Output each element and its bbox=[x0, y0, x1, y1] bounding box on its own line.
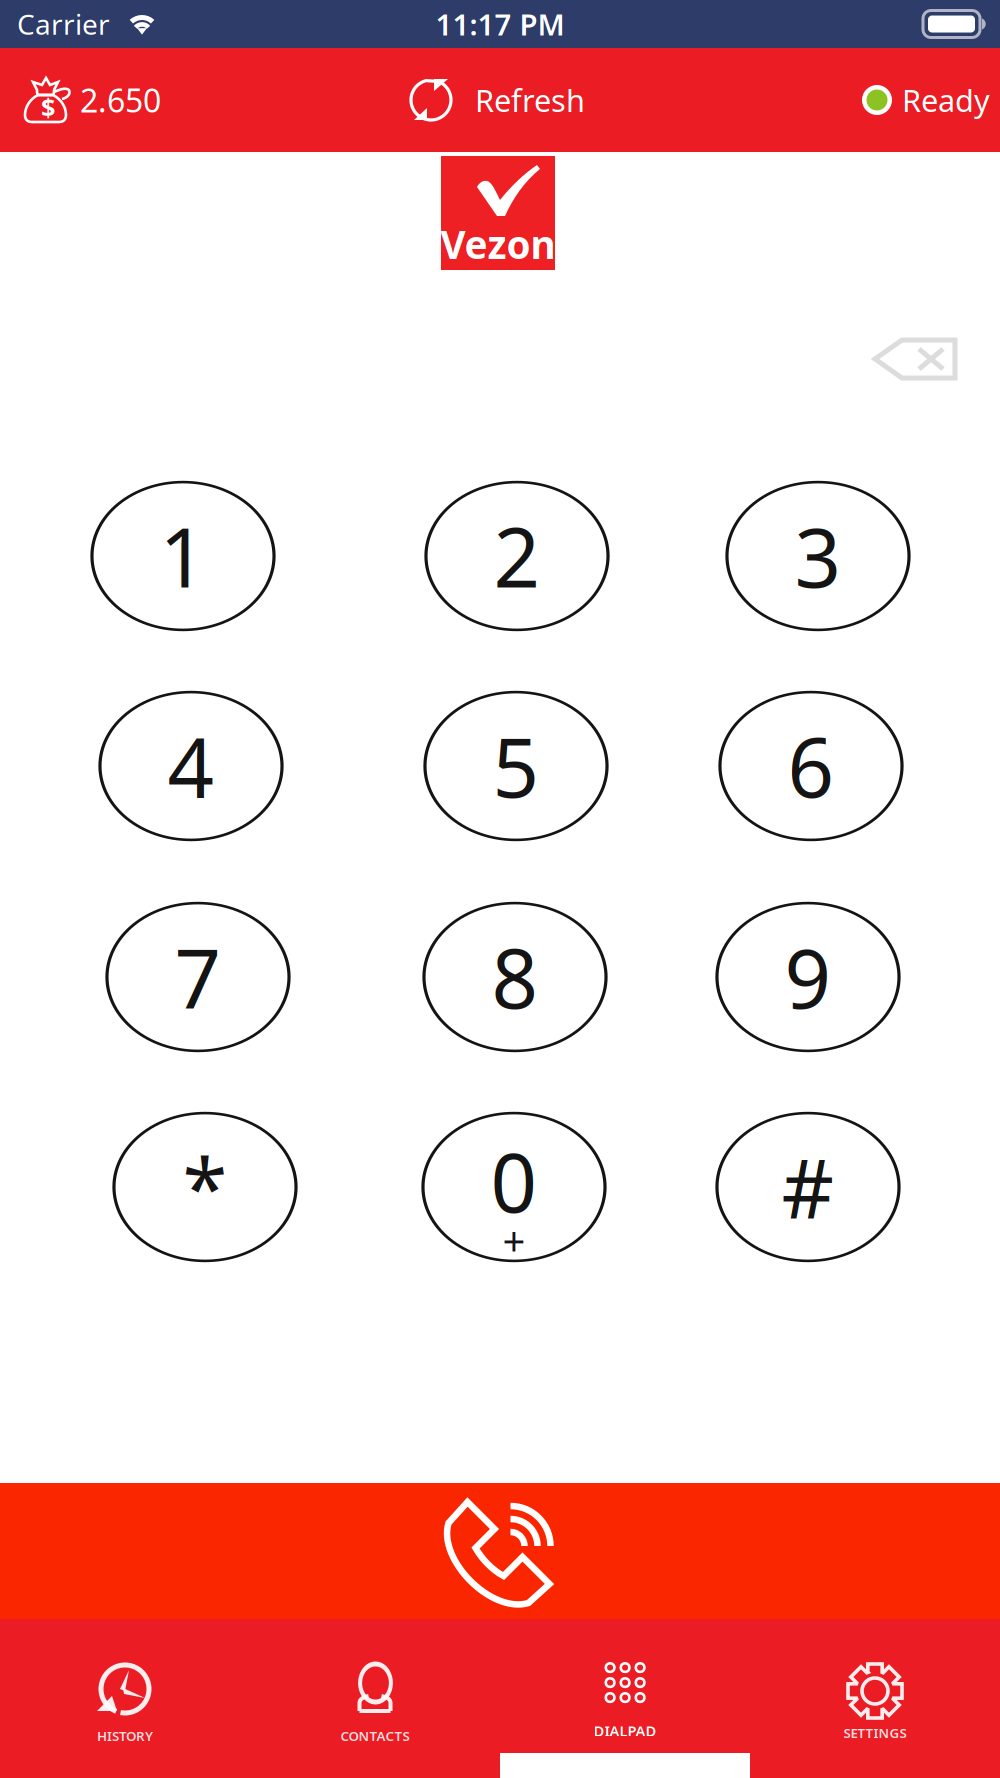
staticText: 3 bbox=[794, 502, 841, 610]
staticText: Carrier bbox=[17, 5, 110, 43]
staticText: DIALPAD bbox=[593, 1721, 656, 1740]
staticText: 2 bbox=[493, 502, 540, 610]
staticText: CONTACTS bbox=[340, 1727, 409, 1745]
staticText: 9 bbox=[784, 923, 831, 1031]
staticText: Vezon bbox=[440, 218, 555, 270]
button[interactable]: # bbox=[703, 1097, 913, 1277]
button[interactable]: SETTINGS bbox=[750, 1619, 1000, 1778]
staticText: * bbox=[182, 1133, 227, 1241]
staticText: Refresh bbox=[475, 80, 585, 120]
button[interactable]: * bbox=[100, 1097, 310, 1277]
staticText: # bbox=[781, 1133, 834, 1241]
button[interactable]: 7 bbox=[93, 887, 303, 1067]
staticText: 1 bbox=[159, 502, 206, 610]
button[interactable]: 8 bbox=[410, 887, 620, 1067]
staticText: 8 bbox=[491, 923, 538, 1031]
button[interactable]: 4 bbox=[86, 676, 296, 856]
staticText: + bbox=[502, 1213, 525, 1266]
staticText: 4 bbox=[167, 712, 214, 820]
button[interactable]: CONTACTS bbox=[250, 1619, 500, 1778]
button[interactable]: 2 bbox=[412, 466, 622, 646]
button[interactable]: Refresh bbox=[393, 48, 597, 152]
button[interactable]: HISTORY bbox=[0, 1619, 250, 1778]
staticText: 0 bbox=[490, 1127, 537, 1235]
button[interactable]: $ bbox=[0, 48, 175, 152]
button[interactable]: 5 bbox=[411, 676, 621, 856]
button[interactable]: 9 bbox=[703, 887, 913, 1067]
button[interactable]: 0 bbox=[409, 1097, 619, 1277]
staticText: HISTORY bbox=[97, 1727, 153, 1745]
staticText: $ bbox=[41, 90, 55, 124]
staticText: 2.650 bbox=[80, 79, 161, 121]
staticText: Ready bbox=[902, 80, 990, 120]
button[interactable]: Call bbox=[0, 1483, 1000, 1619]
staticText: SETTINGS bbox=[843, 1724, 906, 1742]
staticText: 5 bbox=[492, 712, 539, 820]
button[interactable]: DIALPAD bbox=[500, 1619, 750, 1778]
staticText: 6 bbox=[787, 712, 834, 820]
staticText: 11:17 PM bbox=[435, 4, 564, 43]
button[interactable]: Delete bbox=[840, 309, 990, 409]
staticText: 7 bbox=[174, 923, 221, 1031]
button[interactable]: 3 bbox=[713, 466, 923, 646]
button[interactable]: 6 bbox=[706, 676, 916, 856]
button[interactable]: Ready bbox=[858, 48, 1000, 152]
button[interactable]: 1 bbox=[78, 466, 288, 646]
